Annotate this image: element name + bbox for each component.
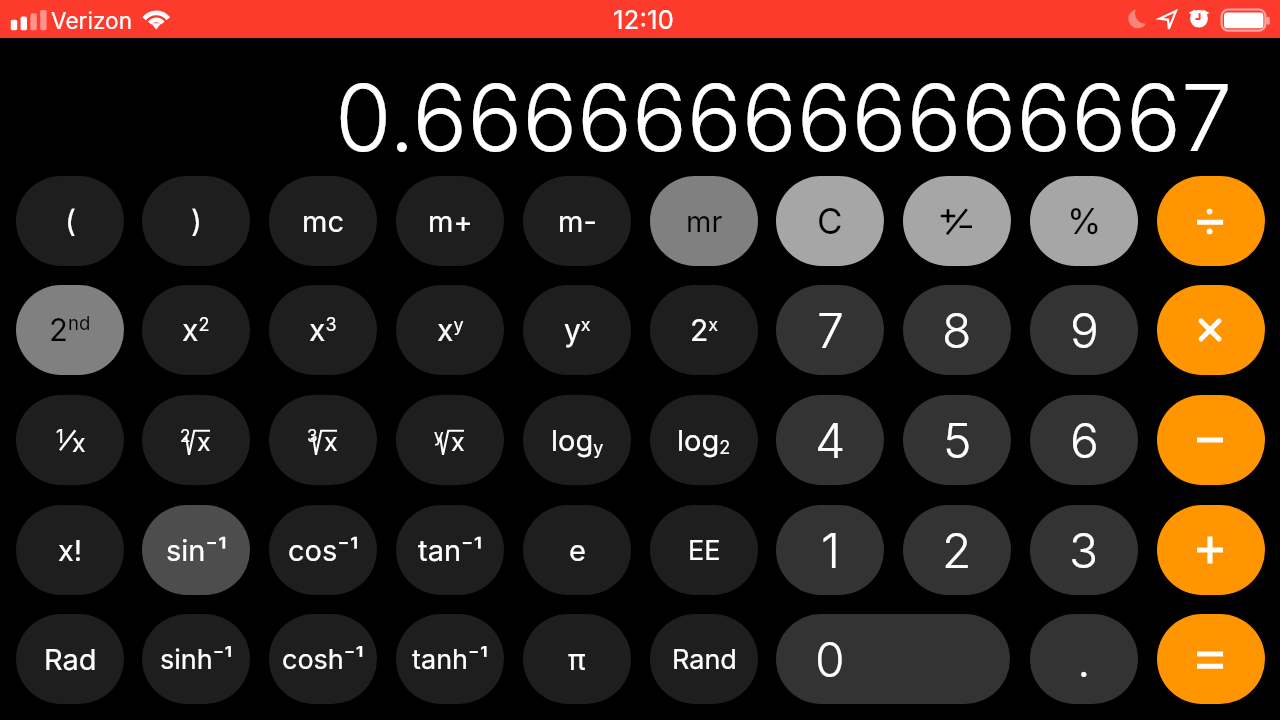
staticText: x — [72, 428, 86, 458]
button[interactable] — [1030, 505, 1138, 595]
button[interactable] — [776, 505, 884, 595]
staticText: 2 — [942, 521, 972, 579]
button[interactable] — [903, 285, 1011, 375]
staticText: sin⁻¹ — [166, 533, 227, 568]
staticText: Rad — [44, 642, 97, 677]
staticText: 3 — [307, 426, 318, 447]
button[interactable]: Divide — [1157, 176, 1265, 266]
other: Location — [1158, 9, 1180, 31]
button[interactable] — [396, 176, 504, 266]
staticText: 6 — [1070, 411, 1099, 469]
staticText: 2nd — [49, 311, 91, 349]
staticText: x — [324, 427, 338, 457]
button[interactable] — [650, 285, 758, 375]
button[interactable] — [903, 505, 1011, 595]
staticText: 8 — [942, 301, 972, 359]
button[interactable] — [1030, 285, 1138, 375]
staticText: 12:10 — [613, 4, 674, 35]
staticText: xy — [437, 312, 464, 348]
staticText: x — [197, 427, 211, 457]
staticText: sinh⁻¹ — [160, 643, 233, 676]
button[interactable] — [269, 505, 377, 595]
button[interactable]: Square root — [142, 395, 250, 485]
button[interactable] — [523, 614, 631, 704]
staticText: 5 — [943, 411, 972, 469]
button[interactable] — [776, 395, 884, 485]
other: Do Not Disturb — [1128, 8, 1149, 29]
button[interactable]: Multiply — [1157, 285, 1265, 375]
staticText: C — [817, 200, 843, 242]
staticText: 1 — [56, 425, 64, 448]
button[interactable] — [396, 505, 504, 595]
staticText: yx — [564, 312, 591, 348]
button[interactable] — [650, 614, 758, 704]
staticText: 0 — [815, 630, 845, 688]
button[interactable]: Equals — [1157, 614, 1265, 704]
staticText: 1 — [821, 521, 840, 579]
staticText: cos⁻¹ — [288, 533, 359, 568]
button[interactable]: y-th root — [396, 395, 504, 485]
button[interactable]: Open parenthesis — [16, 176, 124, 266]
staticText: Rand — [672, 643, 737, 676]
staticText: 7 — [817, 301, 844, 359]
button[interactable] — [142, 285, 250, 375]
staticText: x2 — [182, 312, 210, 348]
staticText: mc — [302, 204, 344, 239]
button[interactable] — [396, 285, 504, 375]
staticText: % — [1067, 200, 1102, 242]
button[interactable] — [269, 176, 377, 266]
button[interactable] — [523, 395, 631, 485]
other: Alarm — [1188, 5, 1210, 27]
button[interactable] — [142, 505, 250, 595]
button[interactable] — [523, 505, 631, 595]
button[interactable] — [650, 505, 758, 595]
button[interactable] — [650, 176, 758, 266]
button[interactable] — [396, 614, 504, 704]
button[interactable] — [523, 285, 631, 375]
staticText: 9 — [1070, 301, 1099, 359]
other: Wi-Fi — [142, 6, 172, 30]
button[interactable] — [1030, 176, 1138, 266]
button[interactable] — [776, 176, 884, 266]
staticText: y — [434, 426, 444, 447]
button[interactable]: Plus — [1157, 505, 1265, 595]
staticText: 4 — [815, 411, 846, 469]
button[interactable]: Minus — [1157, 395, 1265, 485]
staticText: x — [451, 427, 465, 457]
staticText: π — [568, 642, 586, 677]
staticText: tanh⁻¹ — [412, 643, 488, 676]
button[interactable] — [1030, 614, 1138, 704]
button[interactable] — [1030, 395, 1138, 485]
staticText: 2 — [180, 426, 191, 447]
button[interactable] — [523, 176, 631, 266]
button[interactable] — [16, 614, 124, 704]
staticText: ) — [191, 203, 202, 239]
staticText: Verizon — [51, 7, 132, 34]
staticText: m+ — [428, 204, 473, 239]
button[interactable] — [776, 614, 1010, 704]
button[interactable]: Plus or minus — [903, 176, 1011, 266]
staticText: x! — [58, 533, 83, 568]
button[interactable]: One over x — [16, 395, 124, 485]
staticText: ( — [65, 203, 76, 239]
button[interactable] — [16, 505, 124, 595]
button[interactable]: Cube root — [269, 395, 377, 485]
button[interactable] — [16, 285, 124, 375]
staticText: x3 — [309, 312, 337, 348]
button[interactable] — [650, 395, 758, 485]
button[interactable] — [776, 285, 884, 375]
staticText: log2 — [677, 423, 731, 458]
button[interactable] — [903, 395, 1011, 485]
staticText: mr — [686, 204, 723, 239]
button[interactable] — [269, 285, 377, 375]
staticText: EE — [688, 534, 721, 567]
button[interactable] — [142, 614, 250, 704]
other: Cellular signal — [10, 9, 50, 31]
button[interactable] — [269, 614, 377, 704]
button[interactable]: Close parenthesis — [142, 176, 250, 266]
staticText: cosh⁻¹ — [282, 643, 364, 676]
staticText: . — [1077, 630, 1091, 688]
staticText: e — [569, 533, 586, 568]
other: Battery — [1220, 8, 1270, 31]
staticText: 3 — [1069, 521, 1099, 579]
